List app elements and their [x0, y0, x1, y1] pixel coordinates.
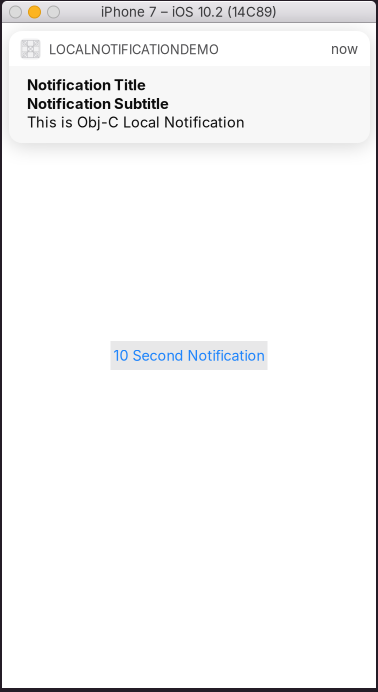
staticText: This is Obj-C Local Notification — [27, 113, 245, 131]
staticText: Notification Subtitle — [27, 95, 169, 112]
staticText: iPhone 7 – iOS 10.2 (14C89) — [101, 4, 277, 20]
staticText: 10 Second Notification — [113, 347, 264, 364]
button[interactable]: Zoom — [47, 6, 59, 18]
button[interactable]: Close — [9, 6, 21, 18]
staticText: Notification Title — [27, 76, 146, 94]
button[interactable]: Minimise — [28, 6, 40, 18]
staticText: now — [331, 41, 358, 57]
staticText: LOCALNOTIFICATIONDEMO — [49, 42, 219, 57]
button[interactable]: 10 Second Notification — [110, 341, 267, 370]
